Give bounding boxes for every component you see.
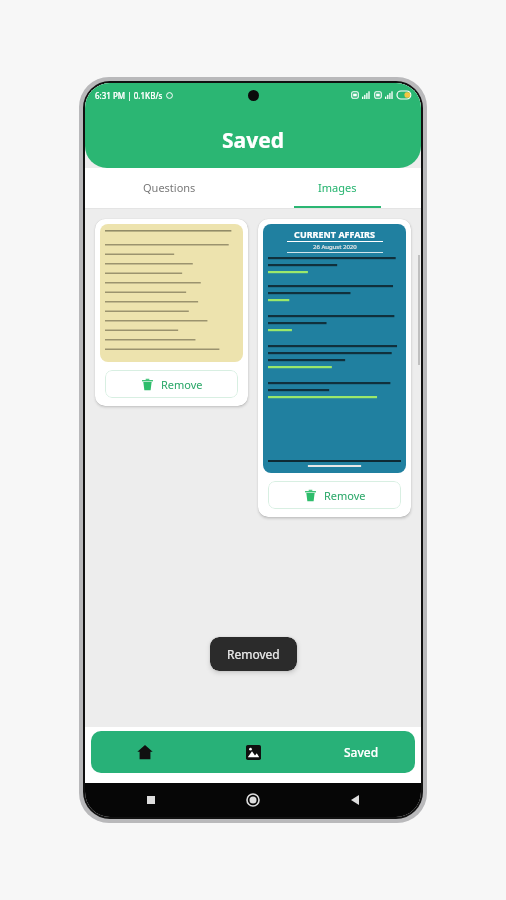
staticText: Questions (143, 180, 196, 195)
staticText: Saved (344, 744, 379, 760)
button[interactable]: Back (345, 790, 365, 810)
staticText: Remove (161, 377, 203, 392)
button[interactable]: Remove (95, 219, 248, 406)
staticText: Images (318, 180, 357, 195)
button[interactable]: Home (91, 731, 199, 773)
button[interactable]: Recents (141, 790, 161, 810)
button[interactable]: Images (199, 731, 307, 773)
staticText: 26 August 2020 (313, 243, 357, 251)
button[interactable]: Remove (268, 481, 401, 509)
button[interactable]: Questions (85, 168, 253, 206)
staticText: 6:31 PM | 0.1KB/s (95, 90, 163, 101)
staticText: Remove (324, 488, 366, 503)
button[interactable]: CURRENT AFFAIRS (258, 219, 411, 517)
button[interactable]: Images (253, 168, 421, 206)
staticText: CURRENT AFFAIRS (294, 228, 375, 240)
staticText: Removed (227, 646, 280, 662)
staticText: Saved (222, 126, 284, 155)
button[interactable]: Saved (307, 731, 415, 773)
button[interactable]: Home (243, 790, 263, 810)
button[interactable]: Remove (105, 370, 238, 398)
